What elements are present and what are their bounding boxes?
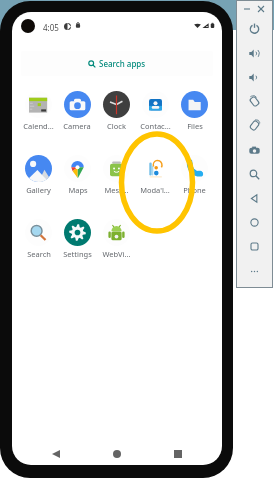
staticText: Clock: [107, 121, 126, 131]
staticText: WebVi...: [102, 249, 131, 259]
button[interactable]: Calend...: [19, 91, 57, 135]
button[interactable]: Volume up: [243, 42, 266, 64]
staticText: Search apps: [99, 58, 146, 69]
button[interactable]: Recents: [169, 445, 187, 463]
button[interactable]: Search apps: [21, 51, 213, 76]
button[interactable]: WebVi...: [97, 219, 135, 263]
button[interactable]: Screenshot: [243, 139, 266, 161]
button[interactable]: Close: [255, 3, 267, 15]
button[interactable]: Rotate right: [243, 114, 266, 136]
button[interactable]: Home: [108, 445, 126, 463]
button[interactable]: Files: [175, 91, 213, 135]
button[interactable]: Phone: [175, 155, 213, 199]
staticText: Calend...: [23, 121, 54, 131]
staticText: 4:05: [43, 22, 59, 33]
staticText: Mess...: [104, 185, 129, 195]
button[interactable]: Contac...: [136, 91, 174, 135]
button[interactable]: Camera: [58, 91, 96, 135]
staticText: Search: [27, 249, 51, 259]
button[interactable]: Back: [243, 187, 266, 209]
staticText: Camera: [63, 121, 91, 131]
staticText: Moda'l...: [140, 185, 170, 195]
button[interactable]: Zoom: [243, 163, 266, 185]
staticText: Settings: [63, 249, 92, 259]
button[interactable]: Volume down: [243, 66, 266, 88]
button[interactable]: Gallery: [19, 155, 57, 199]
button[interactable]: Clock: [97, 91, 135, 135]
button[interactable]: Rotate left: [243, 90, 266, 112]
button[interactable]: Back: [47, 445, 65, 463]
button[interactable]: Search: [19, 219, 57, 263]
button[interactable]: Settings: [58, 219, 96, 263]
staticText: Gallery: [26, 185, 51, 195]
button[interactable]: Moda'l...: [136, 155, 174, 199]
button[interactable]: Power: [243, 17, 266, 39]
staticText: Files: [187, 121, 203, 131]
button[interactable]: Minimize: [241, 3, 253, 15]
staticText: Phone: [183, 185, 206, 195]
button[interactable]: Maps: [58, 155, 96, 199]
staticText: Maps: [68, 185, 88, 195]
button[interactable]: More: [243, 260, 266, 282]
button[interactable]: Home: [243, 211, 266, 233]
button[interactable]: Mess...: [97, 155, 135, 199]
staticText: Contac...: [140, 121, 171, 131]
button[interactable]: Overview: [243, 235, 266, 257]
